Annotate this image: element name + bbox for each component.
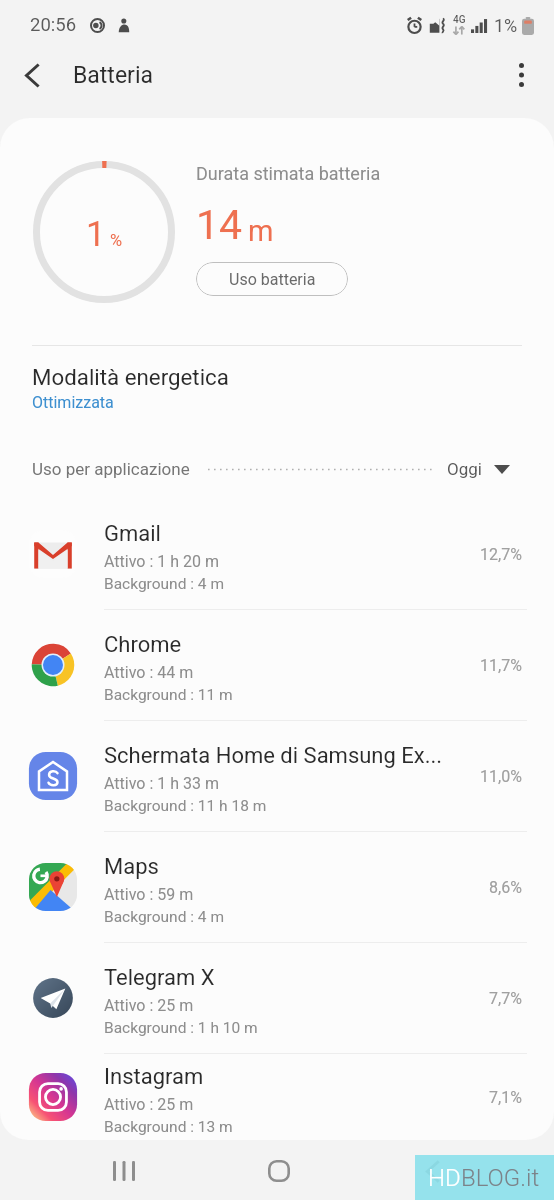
staticText: Attivo : 1 h 33 m: [104, 774, 219, 793]
staticText: Uso batteria: [229, 270, 316, 289]
button[interactable]: Maps: [0, 832, 554, 943]
staticText: BLOG.it: [461, 1164, 540, 1192]
staticText: 7,1%: [489, 1088, 522, 1107]
staticText: Background : 13 m: [104, 1118, 233, 1136]
staticText: Attivo : 59 m: [104, 885, 194, 904]
staticText: Background : 4 m: [104, 575, 224, 593]
button[interactable]: Schermata Home di Samsung Ex...: [0, 721, 554, 832]
staticText: 8,6%: [489, 878, 522, 897]
staticText: Chrome: [104, 632, 182, 658]
button[interactable]: Back: [397, 1148, 467, 1194]
staticText: 1%: [494, 15, 518, 36]
staticText: Attivo : 44 m: [104, 663, 194, 682]
button[interactable]: Modalità energetica: [0, 358, 554, 420]
staticText: Batteria: [73, 62, 153, 89]
staticText: Oggi: [447, 459, 482, 479]
staticText: 12,7%: [480, 545, 522, 564]
button[interactable]: Uso batteria: [196, 262, 348, 296]
button[interactable]: Telegram X: [0, 943, 554, 1054]
staticText: Durata stimata batteria: [196, 163, 381, 184]
staticText: Telegram X: [104, 965, 215, 991]
staticText: HD: [428, 1164, 461, 1192]
staticText: Gmail: [104, 521, 161, 547]
staticText: Ottimizzata: [32, 393, 114, 412]
staticText: Instagram: [104, 1064, 204, 1090]
button[interactable]: Chrome: [0, 610, 554, 721]
staticText: Schermata Home di Samsung Ex...: [104, 743, 443, 769]
button[interactable]: Instagram: [0, 1054, 554, 1140]
staticText: 11,7%: [480, 656, 522, 675]
staticText: Background : 4 m: [104, 908, 224, 926]
button[interactable]: More options: [494, 48, 548, 102]
staticText: Uso per applicazione: [32, 459, 190, 479]
staticText: 4G: [453, 14, 466, 26]
button[interactable]: Oggi: [447, 459, 510, 479]
staticText: 14: [196, 201, 243, 249]
staticText: 1: [86, 214, 106, 254]
staticText: Maps: [104, 854, 159, 880]
staticText: Background : 1 h 10 m: [104, 1019, 258, 1037]
staticText: 11,0%: [480, 767, 522, 786]
button[interactable]: Home: [244, 1148, 314, 1194]
staticText: %: [110, 231, 123, 250]
staticText: Background : 11 h 18 m: [104, 797, 267, 815]
staticText: Attivo : 25 m: [104, 996, 194, 1015]
button[interactable]: Gmail: [0, 499, 554, 610]
staticText: m: [248, 214, 274, 248]
staticText: 20:56: [30, 14, 77, 36]
staticText: Modalità energetica: [32, 364, 229, 390]
staticText: 7,7%: [489, 989, 522, 1008]
staticText: Background : 11 m: [104, 686, 233, 704]
button[interactable]: Back: [0, 43, 62, 107]
staticText: Attivo : 1 h 20 m: [104, 552, 219, 571]
button[interactable]: Recent apps: [89, 1148, 159, 1194]
staticText: Attivo : 25 m: [104, 1095, 194, 1114]
